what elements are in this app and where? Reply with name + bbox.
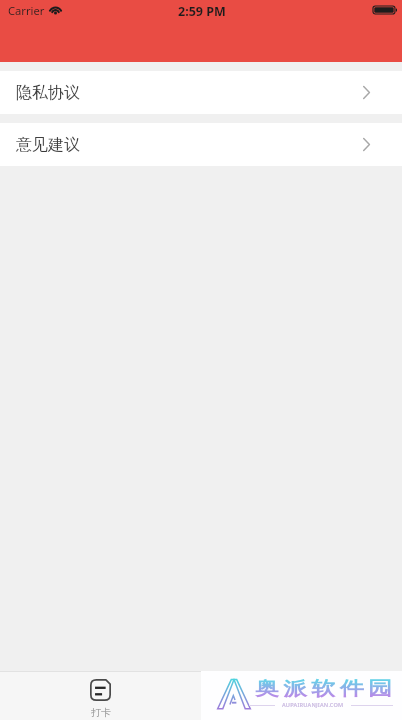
staticText: AUPAIRUANJIAN.COM <box>282 701 344 709</box>
button[interactable]: 隐私协议 <box>0 71 402 114</box>
staticText: 隐私协议 <box>16 83 80 103</box>
button[interactable]: 我的 <box>201 672 402 720</box>
staticText: 打卡 <box>91 706 111 719</box>
staticText: 意见建议 <box>16 135 80 155</box>
staticText: 奥派软件园 <box>253 677 394 700</box>
staticText: 我的 <box>292 706 312 719</box>
staticText: 2:59 PM <box>178 3 226 20</box>
other: Battery full <box>373 6 397 14</box>
button[interactable]: 打卡 <box>0 672 201 720</box>
staticText: Carrier <box>8 3 45 18</box>
other: Wi-Fi signal <box>48 4 63 14</box>
button[interactable]: 意见建议 <box>0 123 402 166</box>
